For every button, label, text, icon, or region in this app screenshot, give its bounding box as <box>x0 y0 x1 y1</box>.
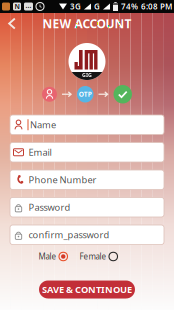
staticText: Phone Number <box>28 174 96 186</box>
staticText: G <box>94 1 100 12</box>
staticText: Password <box>28 201 70 213</box>
staticText: OTP <box>79 90 92 99</box>
button[interactable]: Email <box>10 142 164 162</box>
staticText: Email <box>28 146 51 158</box>
staticText: 74% <box>121 1 138 12</box>
staticText: Female <box>79 251 106 262</box>
button[interactable]: Name <box>10 115 164 134</box>
button[interactable]: Password <box>10 197 164 217</box>
button[interactable]: Female <box>79 251 117 262</box>
staticText: GIG <box>82 71 92 79</box>
staticText: Name <box>30 119 56 131</box>
staticText: 3G <box>70 1 81 12</box>
button[interactable]: SAVE & CONTINOUE <box>39 280 135 298</box>
staticText: NEW ACCOUNT <box>42 15 131 31</box>
staticText: ... <box>25 1 31 10</box>
staticText: N <box>14 2 19 11</box>
button[interactable]: confirm_password <box>10 225 164 244</box>
button[interactable]: Back <box>0 13 16 34</box>
button[interactable]: Male <box>38 251 67 262</box>
button[interactable]: Phone Number <box>10 170 164 189</box>
staticText: Male <box>38 251 56 262</box>
staticText: confirm_password <box>28 229 109 241</box>
staticText: SAVE & CONTINOUE <box>42 283 132 296</box>
staticText: 6:08 PM <box>141 1 172 12</box>
